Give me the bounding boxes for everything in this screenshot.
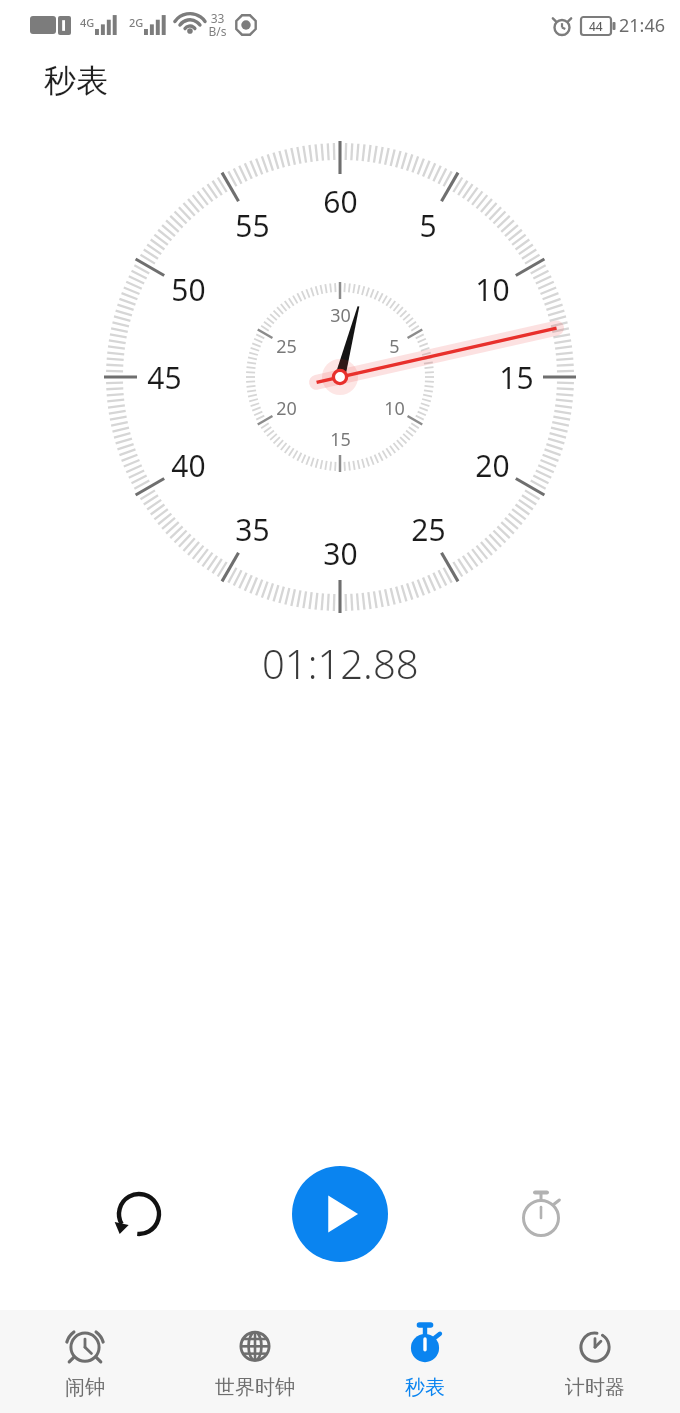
- staticText: 5: [389, 334, 400, 359]
- staticText: 4G: [80, 15, 95, 30]
- staticText: 30: [323, 533, 358, 574]
- staticText: 20: [276, 396, 297, 421]
- staticText: 25: [411, 509, 446, 550]
- staticText: 10: [475, 269, 510, 310]
- staticText: 15: [330, 427, 351, 452]
- staticText: 15: [499, 357, 534, 398]
- button[interactable]: Start: [292, 1166, 388, 1262]
- staticText: 5: [419, 205, 437, 246]
- staticText: 2G: [129, 15, 144, 30]
- button[interactable]: 闹钟: [0, 1310, 170, 1413]
- button[interactable]: 世界时钟: [170, 1310, 340, 1413]
- staticText: 35: [235, 509, 270, 550]
- button[interactable]: Reset: [97, 1172, 181, 1256]
- staticText: 33 B/s: [208, 10, 227, 40]
- staticText: 60: [323, 181, 358, 222]
- staticText: 45: [147, 357, 182, 398]
- button[interactable]: 计时器: [510, 1310, 680, 1413]
- staticText: 计时器: [565, 1375, 625, 1400]
- staticText: 40: [171, 445, 206, 486]
- staticText: 10: [384, 396, 405, 421]
- staticText: 55: [235, 205, 270, 246]
- staticText: 秒表: [405, 1375, 445, 1400]
- staticText: 44: [589, 18, 603, 34]
- staticText: 50: [171, 269, 206, 310]
- button[interactable]: 秒表: [340, 1310, 510, 1413]
- staticText: 闹钟: [65, 1375, 105, 1400]
- staticText: 30: [330, 303, 351, 328]
- staticText: 01:12.88: [262, 636, 419, 690]
- staticText: 秒表: [44, 61, 108, 101]
- button[interactable]: Lap: [499, 1172, 583, 1256]
- staticText: 21:46: [619, 13, 666, 38]
- staticText: 20: [475, 445, 510, 486]
- staticText: 25: [276, 334, 297, 359]
- staticText: 世界时钟: [215, 1375, 295, 1400]
